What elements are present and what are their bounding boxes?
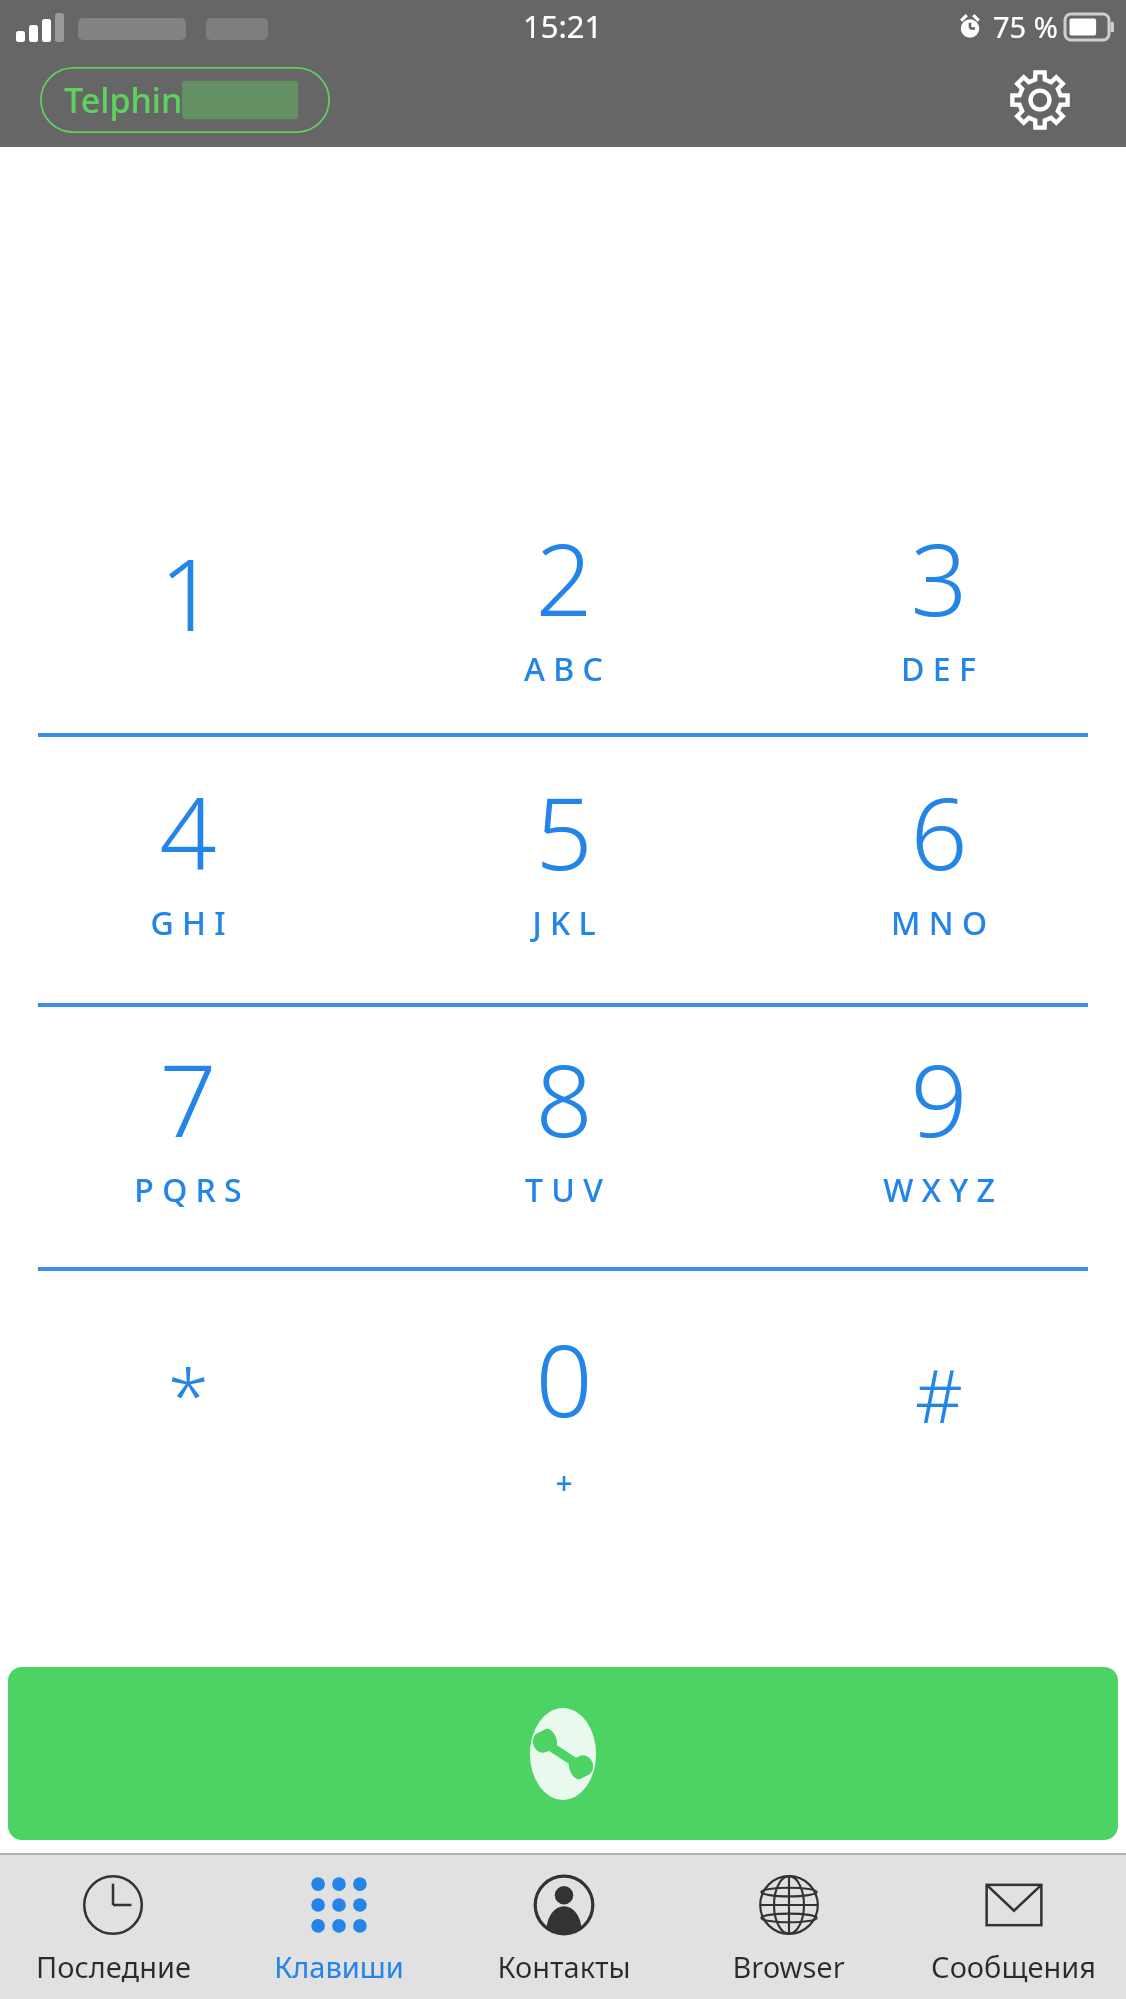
- staticText: 3: [910, 509, 968, 645]
- button[interactable]: Последние: [0, 1855, 226, 1999]
- staticText: 9: [910, 1030, 968, 1166]
- button[interactable]: 0: [376, 1271, 751, 1561]
- staticText: Сообщения: [931, 1947, 1096, 1986]
- staticText: 7: [159, 1030, 217, 1166]
- button[interactable]: 4: [0, 737, 376, 1003]
- button[interactable]: Telphin: [40, 67, 330, 133]
- staticText: *: [168, 1344, 209, 1445]
- button[interactable]: 1: [0, 499, 376, 733]
- staticText: G H I: [150, 901, 226, 945]
- staticText: W X Y Z: [883, 1168, 995, 1212]
- staticText: 75 %: [993, 7, 1058, 46]
- staticText: P Q R S: [134, 1168, 242, 1212]
- staticText: D E F: [901, 647, 976, 691]
- button[interactable]: Settings: [1002, 62, 1078, 138]
- button[interactable]: 6: [751, 737, 1126, 1003]
- button[interactable]: 8: [376, 1007, 751, 1267]
- button[interactable]: 2: [376, 499, 751, 733]
- staticText: Контакты: [497, 1947, 631, 1986]
- staticText: #: [915, 1344, 963, 1445]
- staticText: Клавиши: [274, 1947, 404, 1986]
- staticText: T U V: [525, 1168, 603, 1212]
- button[interactable]: Call: [8, 1667, 1118, 1840]
- button[interactable]: *: [0, 1271, 376, 1561]
- staticText: Browser: [732, 1947, 845, 1986]
- staticText: 8: [535, 1030, 593, 1166]
- staticText: Telphin: [64, 77, 183, 123]
- button[interactable]: 5: [376, 737, 751, 1003]
- button[interactable]: #: [751, 1271, 1126, 1561]
- button[interactable]: Сообщения: [901, 1855, 1126, 1999]
- staticText: 2: [535, 509, 593, 645]
- button[interactable]: Контакты: [451, 1855, 676, 1999]
- staticText: 0: [535, 1310, 593, 1446]
- staticText: A B C: [524, 647, 603, 691]
- button[interactable]: 7: [0, 1007, 376, 1267]
- staticText: +: [555, 1462, 573, 1503]
- staticText: 6: [910, 763, 968, 899]
- staticText: J K L: [532, 901, 596, 945]
- button[interactable]: Browser: [676, 1855, 901, 1999]
- button[interactable]: 9: [751, 1007, 1126, 1267]
- staticText: 15:21: [523, 5, 603, 47]
- staticText: 5: [535, 763, 593, 899]
- staticText: Последние: [36, 1947, 191, 1986]
- staticText: M N O: [891, 901, 987, 945]
- button[interactable]: 3: [751, 499, 1126, 733]
- staticText: 1: [159, 524, 217, 660]
- staticText: 4: [159, 763, 217, 899]
- button[interactable]: Клавиши: [226, 1855, 451, 1999]
